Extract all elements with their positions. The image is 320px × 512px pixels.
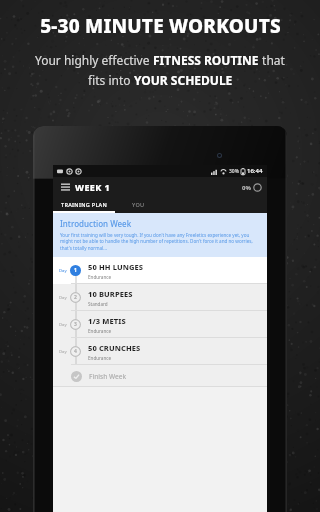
staticText: 16:44 [247,167,263,175]
staticText: Standard [88,301,108,307]
staticText: Day [59,349,67,355]
staticText: 30% [229,168,239,175]
staticText: TRAINING PLAN [61,201,108,208]
staticText: Finish Week [89,372,127,381]
staticText: Your highly effective [35,52,153,68]
staticText: FITNESS ROUTINE [153,52,259,68]
button[interactable]: Finish Week [53,365,267,387]
staticText: fits into [88,72,134,88]
button[interactable]: Introduction Week [53,213,267,257]
staticText: that [259,52,285,68]
staticText: 1 [74,267,77,274]
staticText: Endurance [88,355,112,361]
staticText: Introduction Week [60,218,132,229]
staticText: Day [59,268,67,274]
staticText: 0% [242,184,251,192]
button[interactable]: Day [53,257,267,284]
staticText: Day [59,322,67,328]
staticText: 50 CRUNCHES [88,343,141,353]
staticText: Your first training will be very tough. … [60,232,260,252]
staticText: Endurance [88,328,112,334]
button[interactable]: Open navigation menu [58,180,72,194]
staticText: 10 BURPEES [88,289,133,299]
staticText: 1/3 METIS [88,316,126,326]
button[interactable]: Day [53,338,267,365]
staticText: Day [59,295,67,301]
staticText: 4 [74,348,77,355]
staticText: 5-30 MINUTE WORKOUTS [40,13,281,39]
staticText: 50 HH LUNGES [88,262,144,272]
button[interactable]: YOU [115,197,161,211]
staticText: YOUR SCHEDULE [134,72,233,88]
button[interactable]: Day [53,311,267,338]
button[interactable]: WEEK 1 [75,181,111,193]
staticText: 2 [74,294,77,301]
button[interactable]: Week progress 0 percent [242,183,262,192]
button[interactable]: Day [53,284,267,311]
staticText: 3 [74,321,77,328]
button[interactable]: TRAINING PLAN [53,197,115,211]
staticText: YOU [132,201,145,208]
staticText: Endurance [88,274,112,280]
